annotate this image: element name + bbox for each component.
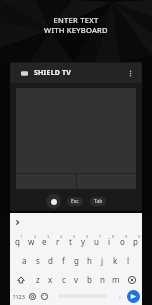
staticText: e (42, 236, 47, 247)
staticText: v (74, 274, 79, 285)
staticText: 7 (99, 234, 102, 239)
button[interactable]: c (57, 270, 70, 289)
staticText: l (127, 255, 130, 266)
button[interactable]: b (83, 270, 96, 289)
staticText: p (133, 236, 138, 247)
staticText: a (22, 255, 27, 266)
staticText: 1 (20, 234, 23, 239)
button[interactable]: n (96, 270, 109, 289)
button[interactable]: Keyboard (17, 66, 31, 80)
staticText: s (36, 255, 40, 266)
staticText: h (87, 255, 92, 266)
button[interactable]: u (90, 232, 103, 251)
button[interactable]: l (122, 251, 135, 270)
button[interactable]: ?123 (10, 289, 27, 305)
button[interactable]: q (10, 232, 24, 251)
staticText: 2 (34, 234, 37, 239)
staticText: Tab (94, 198, 103, 205)
staticText: y (81, 236, 86, 247)
button[interactable]: z (31, 270, 44, 289)
button[interactable]: k (109, 251, 122, 270)
staticText: 3 (47, 234, 50, 239)
staticText: 0 (138, 234, 141, 239)
button[interactable]: d (44, 251, 57, 270)
staticText: 9 (125, 234, 128, 239)
staticText: x (48, 274, 53, 285)
staticText: Esc (71, 198, 79, 205)
button[interactable]: p (129, 232, 142, 251)
staticText: d (48, 255, 53, 266)
staticText: SHIELD TV (34, 68, 72, 78)
staticText: r (56, 236, 60, 247)
button[interactable]: x (44, 270, 57, 289)
button[interactable]: . (115, 289, 124, 305)
staticText: n (100, 274, 105, 285)
staticText: 8 (112, 234, 115, 239)
button[interactable]: w (24, 232, 38, 251)
staticText: b (87, 274, 92, 285)
staticText: . (119, 291, 121, 301)
button[interactable]: j (96, 251, 109, 270)
staticText: f (62, 255, 65, 266)
button[interactable]: Tab (90, 197, 106, 206)
button[interactable]: h (83, 251, 96, 270)
staticText: ?123 (13, 293, 25, 300)
staticText: ENTER TEXT WITH KEYBOARD (44, 15, 108, 35)
staticText: u (94, 236, 99, 247)
staticText: c (62, 274, 66, 285)
staticText: i (108, 236, 111, 247)
staticText: z (36, 274, 40, 285)
button[interactable]: e (38, 232, 51, 251)
button[interactable]: f (57, 251, 70, 270)
button[interactable]: i (103, 232, 116, 251)
button[interactable]: v (70, 270, 83, 289)
button[interactable]: o (116, 232, 129, 251)
staticText: 5 (73, 234, 76, 239)
button[interactable]: Backspace (122, 270, 142, 289)
button[interactable]: Emoji (38, 289, 50, 305)
staticText: g (74, 255, 79, 266)
staticText: 4 (60, 234, 63, 239)
staticText: m (112, 274, 120, 285)
button[interactable]: g (70, 251, 83, 270)
button[interactable]: More options (121, 64, 139, 82)
staticText: k (113, 255, 118, 266)
button[interactable]: Esc (67, 197, 83, 206)
staticText: 6 (86, 234, 89, 239)
staticText: j (101, 255, 104, 266)
button[interactable]: r (51, 232, 64, 251)
button[interactable]: Send (124, 289, 142, 305)
button[interactable]: m (109, 270, 122, 289)
button[interactable]: Settings (27, 289, 38, 305)
button[interactable]: t (64, 232, 77, 251)
button[interactable]: Home (46, 194, 61, 209)
button[interactable]: Expand suggestions (10, 213, 24, 232)
staticText: t (69, 236, 72, 247)
button[interactable]: y (77, 232, 90, 251)
button[interactable]: Shift (10, 270, 31, 289)
staticText: o (120, 236, 125, 247)
button[interactable]: s (31, 251, 44, 270)
staticText: q (15, 236, 20, 247)
staticText: w (28, 236, 35, 247)
button[interactable]: a (18, 251, 31, 270)
